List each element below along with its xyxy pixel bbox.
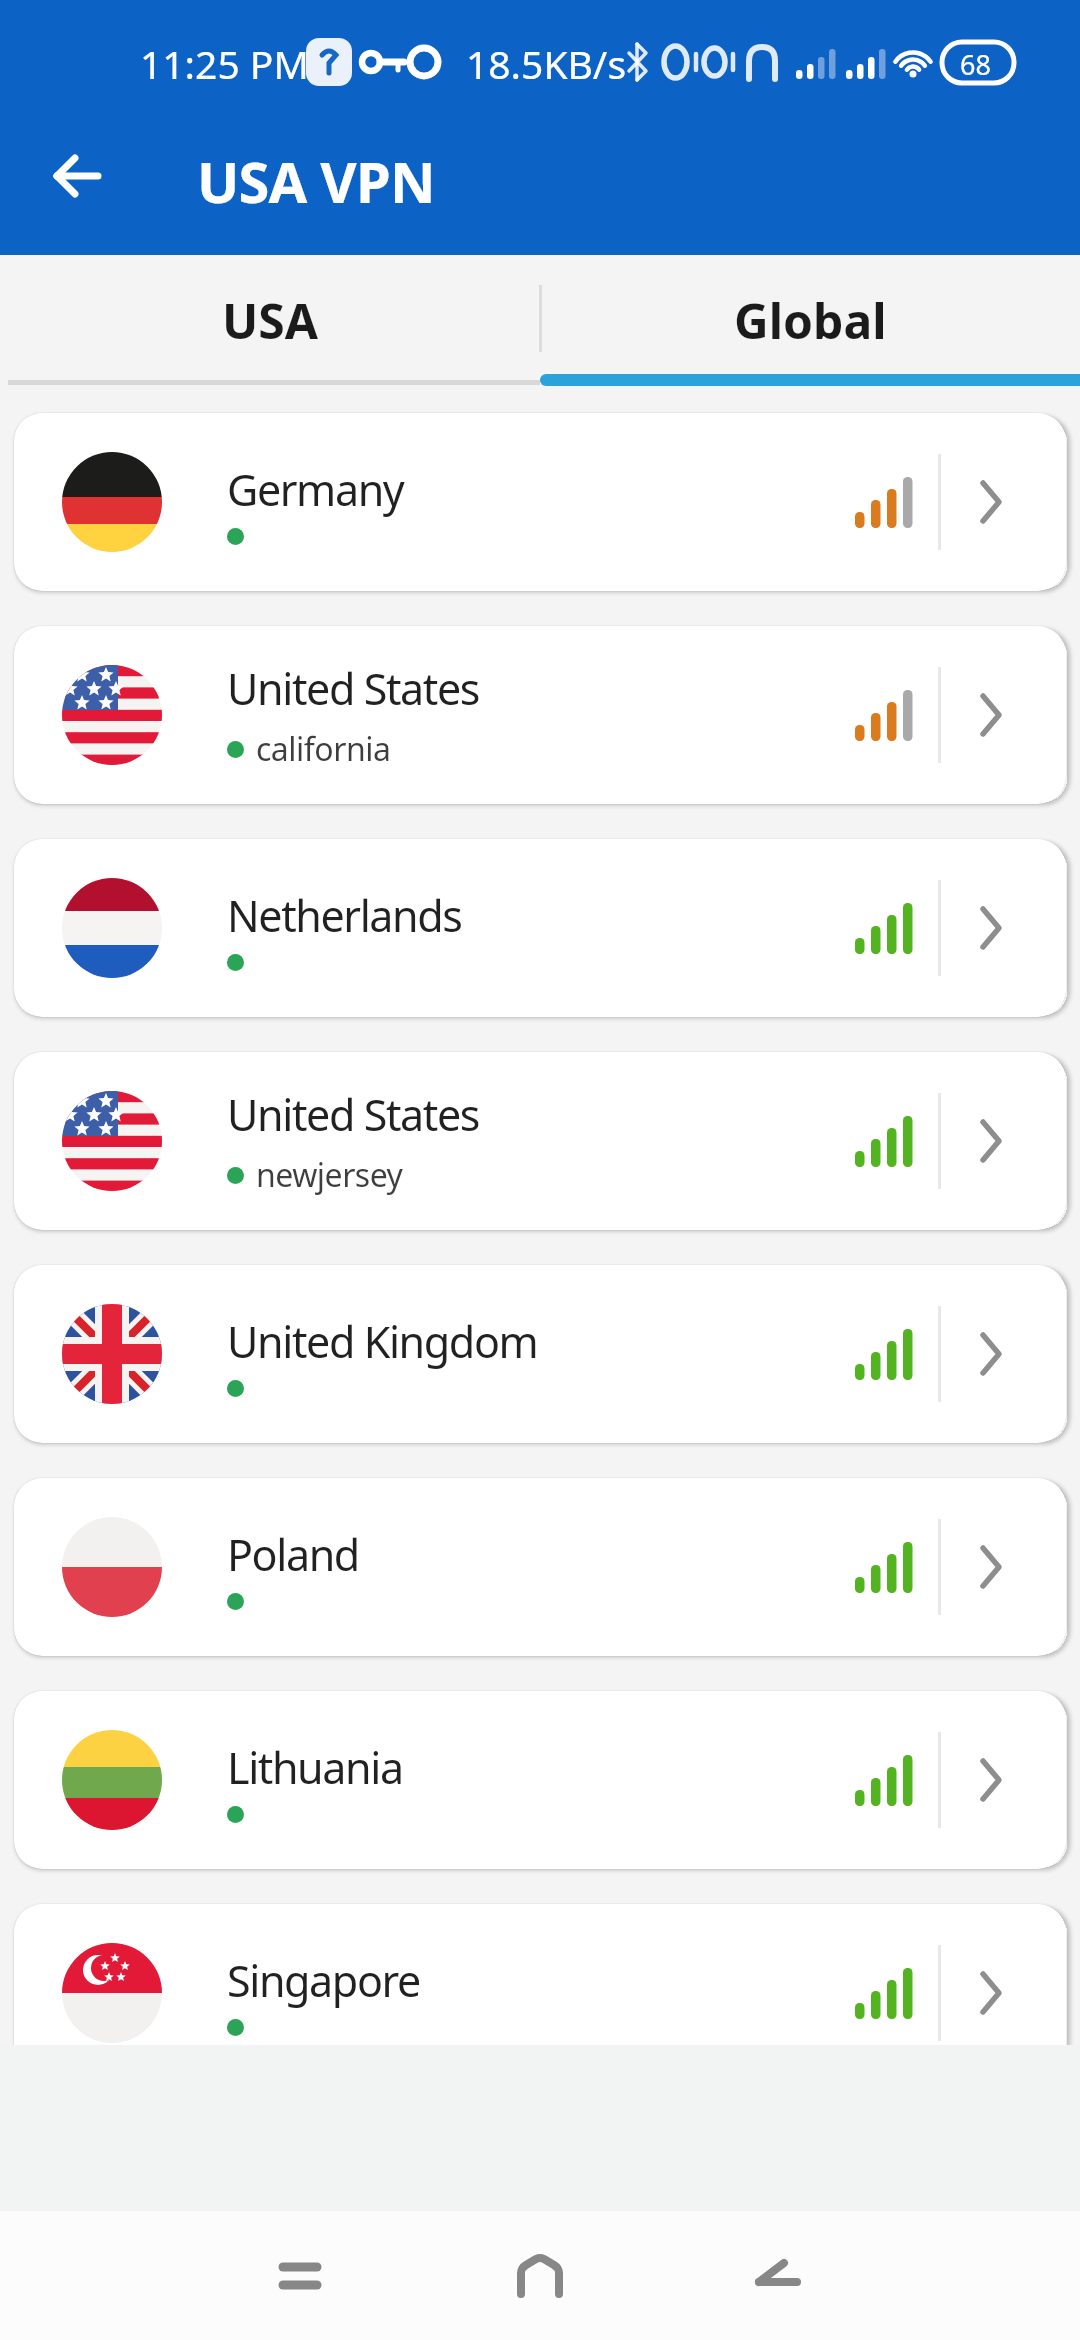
staticText: 11:25 PM: [140, 37, 309, 90]
staticText: california: [256, 727, 391, 771]
staticText: USA: [222, 288, 318, 353]
button[interactable]: United States: [14, 626, 1066, 804]
staticText: 18.5KB/s: [466, 37, 627, 90]
button[interactable]: USA: [0, 255, 540, 386]
staticText: newjersey: [256, 1153, 403, 1197]
staticText: United Kingdom: [227, 1312, 538, 1371]
staticText: USA VPN: [197, 143, 435, 219]
staticText: Global: [734, 288, 887, 353]
button[interactable]: [756, 2256, 800, 2296]
staticText: Lithuania: [227, 1738, 403, 1797]
button[interactable]: Lithuania: [14, 1691, 1066, 1869]
button[interactable]: [517, 2256, 563, 2296]
staticText: Germany: [227, 460, 404, 519]
button[interactable]: [279, 2256, 321, 2296]
staticText: Poland: [227, 1525, 359, 1584]
button[interactable]: Netherlands: [14, 839, 1066, 1017]
button[interactable]: Germany: [14, 413, 1066, 591]
staticText: United States: [227, 659, 479, 718]
button[interactable]: United States: [14, 1052, 1066, 1230]
button[interactable]: United Kingdom: [14, 1265, 1066, 1443]
button[interactable]: Poland: [14, 1478, 1066, 1656]
staticText: United States: [227, 1085, 479, 1144]
staticText: Singapore: [227, 1951, 420, 2010]
button[interactable]: [53, 155, 101, 197]
button[interactable]: Global: [540, 255, 1080, 386]
button[interactable]: Singapore: [14, 1904, 1066, 2045]
staticText: 68: [960, 46, 991, 83]
staticText: Netherlands: [227, 886, 462, 945]
